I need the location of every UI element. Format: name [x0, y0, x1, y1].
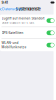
staticText: ‹	[0, 6, 1, 12]
staticText: Zugriff auf meinen Standort	[1, 17, 44, 20]
button[interactable]: ‹	[0, 5, 23, 13]
staticText: GPS-Satelliten	[1, 31, 23, 35]
staticText: Systemdienste	[15, 7, 40, 11]
staticText: Letzter Standort vor 5 Min.	[1, 21, 34, 25]
button[interactable]: Ein/Aus	[46, 18, 54, 23]
staticText: Mobilfunknetze	[1, 45, 26, 49]
button[interactable]: Ein/Aus	[46, 31, 54, 35]
staticText: 9:41	[1, 0, 7, 5]
button[interactable]: Ein/Aus	[46, 43, 54, 47]
staticText: Datenschutz	[2, 7, 23, 11]
staticText: WLAN- und	[1, 41, 18, 45]
